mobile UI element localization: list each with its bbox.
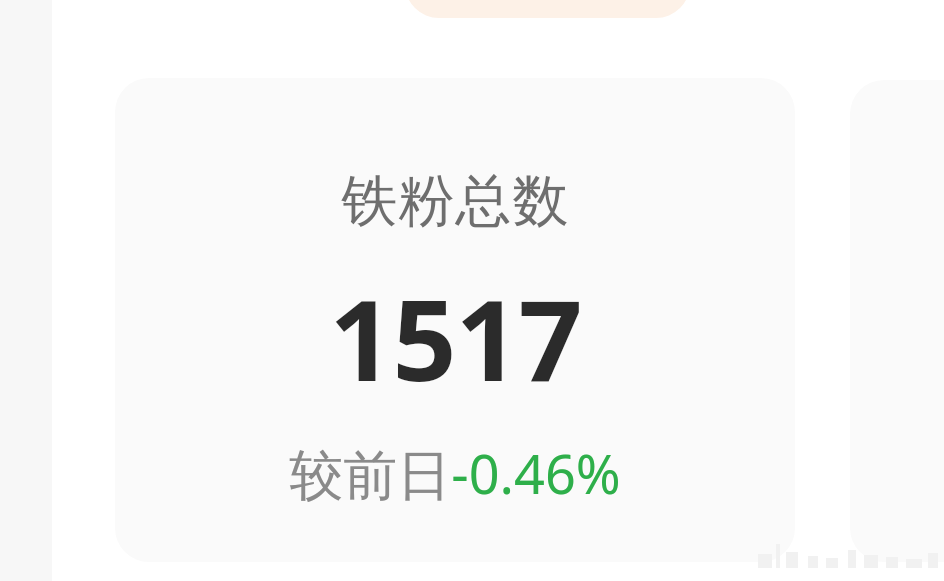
staticText: 铁粉总数 <box>341 166 569 237</box>
staticText: 较前日-0.46% <box>289 436 621 510</box>
staticText: 1517 <box>329 261 582 414</box>
button[interactable]: 铁粉总数 <box>115 78 795 562</box>
